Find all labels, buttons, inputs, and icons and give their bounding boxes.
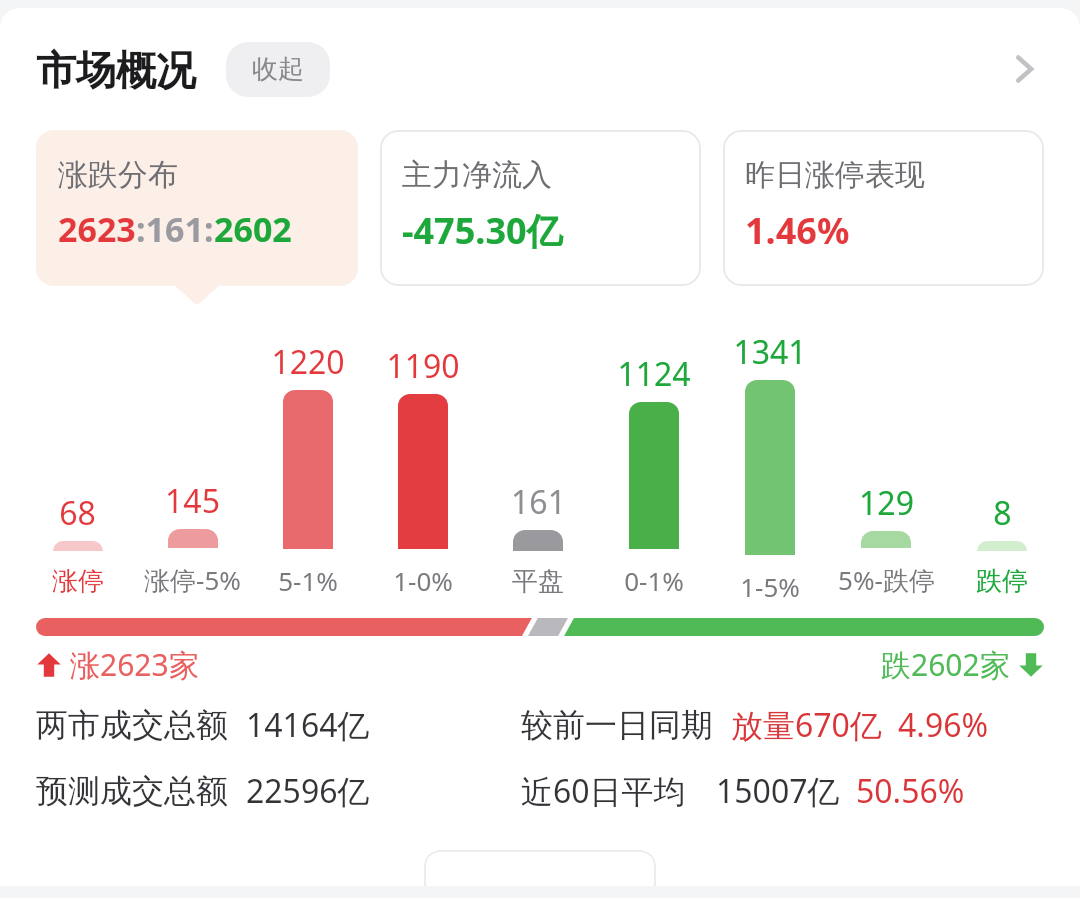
staticText: 1-5%	[740, 569, 800, 598]
staticText: :161:	[136, 206, 214, 252]
staticText: 1341	[733, 330, 807, 374]
staticText: 1190	[386, 344, 460, 388]
staticText: 0-1%	[624, 563, 684, 598]
button[interactable]	[424, 850, 656, 886]
staticText: 较前一日同期	[521, 705, 713, 745]
staticText: 68	[59, 491, 96, 535]
staticText: 1.46%	[745, 206, 850, 255]
staticText: 收起	[252, 53, 304, 86]
staticText: 预测成交总额	[36, 771, 228, 811]
staticText: 跌停	[976, 565, 1028, 598]
staticText: 2602	[214, 206, 292, 252]
staticText: 22596亿	[246, 769, 370, 813]
staticText: -475.30亿	[402, 206, 563, 255]
staticText: 跌2602家	[881, 644, 1010, 685]
button[interactable]: 昨日涨停表现	[723, 130, 1044, 286]
staticText: 2623	[58, 206, 136, 252]
staticText: 涨2623家	[70, 644, 199, 685]
staticText: 50.56%	[856, 769, 965, 813]
staticText: 市场概况	[36, 45, 196, 95]
staticText: 1220	[271, 340, 345, 384]
staticText: 161	[511, 480, 566, 524]
staticText: 4.96%	[898, 703, 989, 747]
staticText: 129	[859, 481, 914, 525]
staticText: 涨跌分布	[58, 156, 178, 194]
staticText: 1124	[617, 352, 691, 396]
staticText: 近60日平均	[521, 769, 686, 813]
staticText: 涨停	[52, 565, 104, 598]
staticText: 15007亿	[716, 769, 840, 813]
staticText: 主力净流入	[402, 156, 552, 194]
button[interactable]: 主力净流入	[380, 130, 701, 286]
staticText: 5-1%	[278, 563, 338, 598]
button[interactable]: More	[994, 39, 1054, 99]
staticText: 5%-跌停	[838, 562, 935, 598]
button[interactable]: 涨跌分布	[36, 130, 358, 286]
staticText: 两市成交总额	[36, 705, 228, 745]
staticText: 1-0%	[393, 563, 453, 598]
staticText: 放量670亿	[731, 703, 882, 747]
staticText: 8	[993, 491, 1012, 535]
staticText: 平盘	[512, 565, 564, 598]
staticText: 昨日涨停表现	[745, 156, 925, 194]
staticText: 14164亿	[246, 703, 370, 747]
staticText: 涨停-5%	[144, 562, 241, 598]
staticText: 145	[165, 479, 220, 523]
button[interactable]: 收起	[226, 42, 330, 97]
